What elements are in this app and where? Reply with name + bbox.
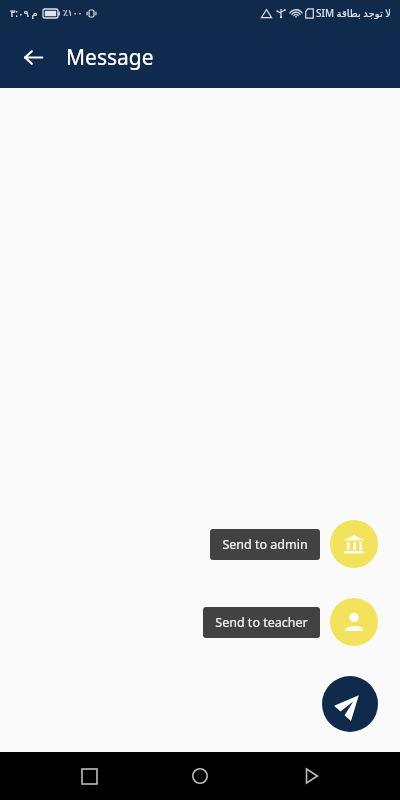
button[interactable]: Back xyxy=(289,754,333,798)
button[interactable]: Recent apps xyxy=(67,754,111,798)
button[interactable]: Send to admin xyxy=(330,520,378,568)
staticText: Message xyxy=(66,43,154,72)
staticText: Send to admin xyxy=(222,536,308,553)
button[interactable]: Send to teacher xyxy=(330,598,378,646)
button[interactable]: Send to admin xyxy=(210,529,320,560)
staticText: SIM لا توجد بطاقة xyxy=(316,6,392,20)
staticText: ٪١٠٠ xyxy=(63,8,83,18)
button[interactable]: Send to teacher xyxy=(203,607,320,638)
staticText: م ٣:٠٩ xyxy=(10,6,38,20)
button[interactable]: Home xyxy=(178,754,222,798)
button[interactable]: Send message xyxy=(322,676,378,732)
button[interactable]: Back xyxy=(12,36,54,78)
staticText: Send to teacher xyxy=(215,614,308,631)
